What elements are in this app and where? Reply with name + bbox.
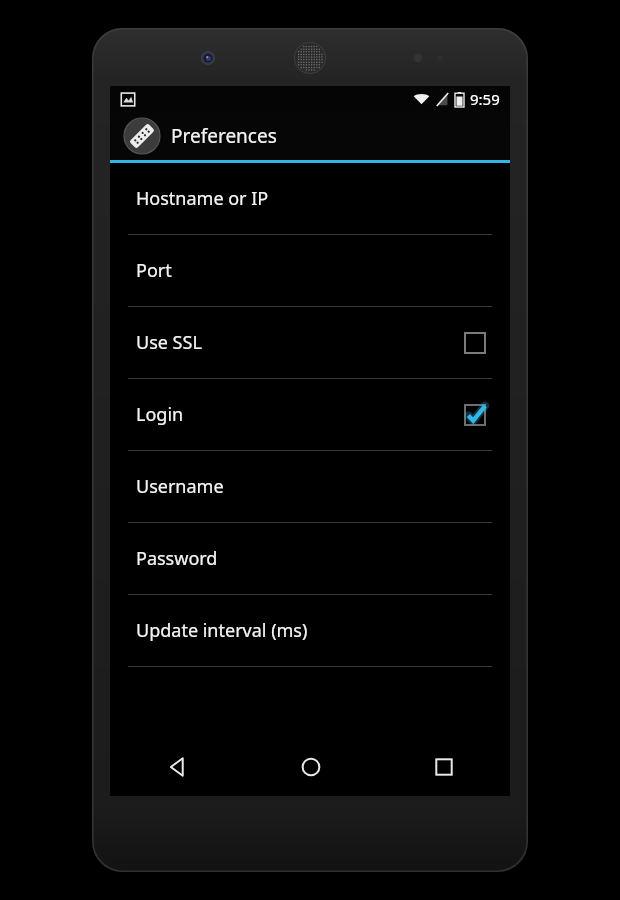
staticText: Hostname or IP [136, 186, 486, 211]
button[interactable]: Back [110, 737, 244, 796]
button[interactable]: Hostname or IP [110, 163, 510, 234]
staticText: 9:59 [470, 89, 500, 109]
staticText: Username [136, 474, 486, 499]
staticText: Password [136, 546, 486, 571]
staticText: Login [136, 402, 464, 427]
staticText: Port [136, 258, 486, 283]
staticText: Use SSL [136, 330, 464, 355]
button[interactable]: Port [110, 235, 510, 306]
button[interactable]: Login [110, 379, 510, 450]
other: Unchecked [464, 332, 486, 354]
button[interactable]: Password [110, 523, 510, 594]
button[interactable]: Home [244, 737, 377, 796]
staticText: Update interval (ms) [136, 618, 486, 643]
button[interactable]: Username [110, 451, 510, 522]
button[interactable]: Update interval (ms) [110, 595, 510, 666]
other: Checked [464, 404, 486, 426]
button[interactable]: Use SSL [110, 307, 510, 378]
staticText: Preferences [171, 123, 277, 149]
button[interactable]: Recent apps [377, 737, 510, 796]
